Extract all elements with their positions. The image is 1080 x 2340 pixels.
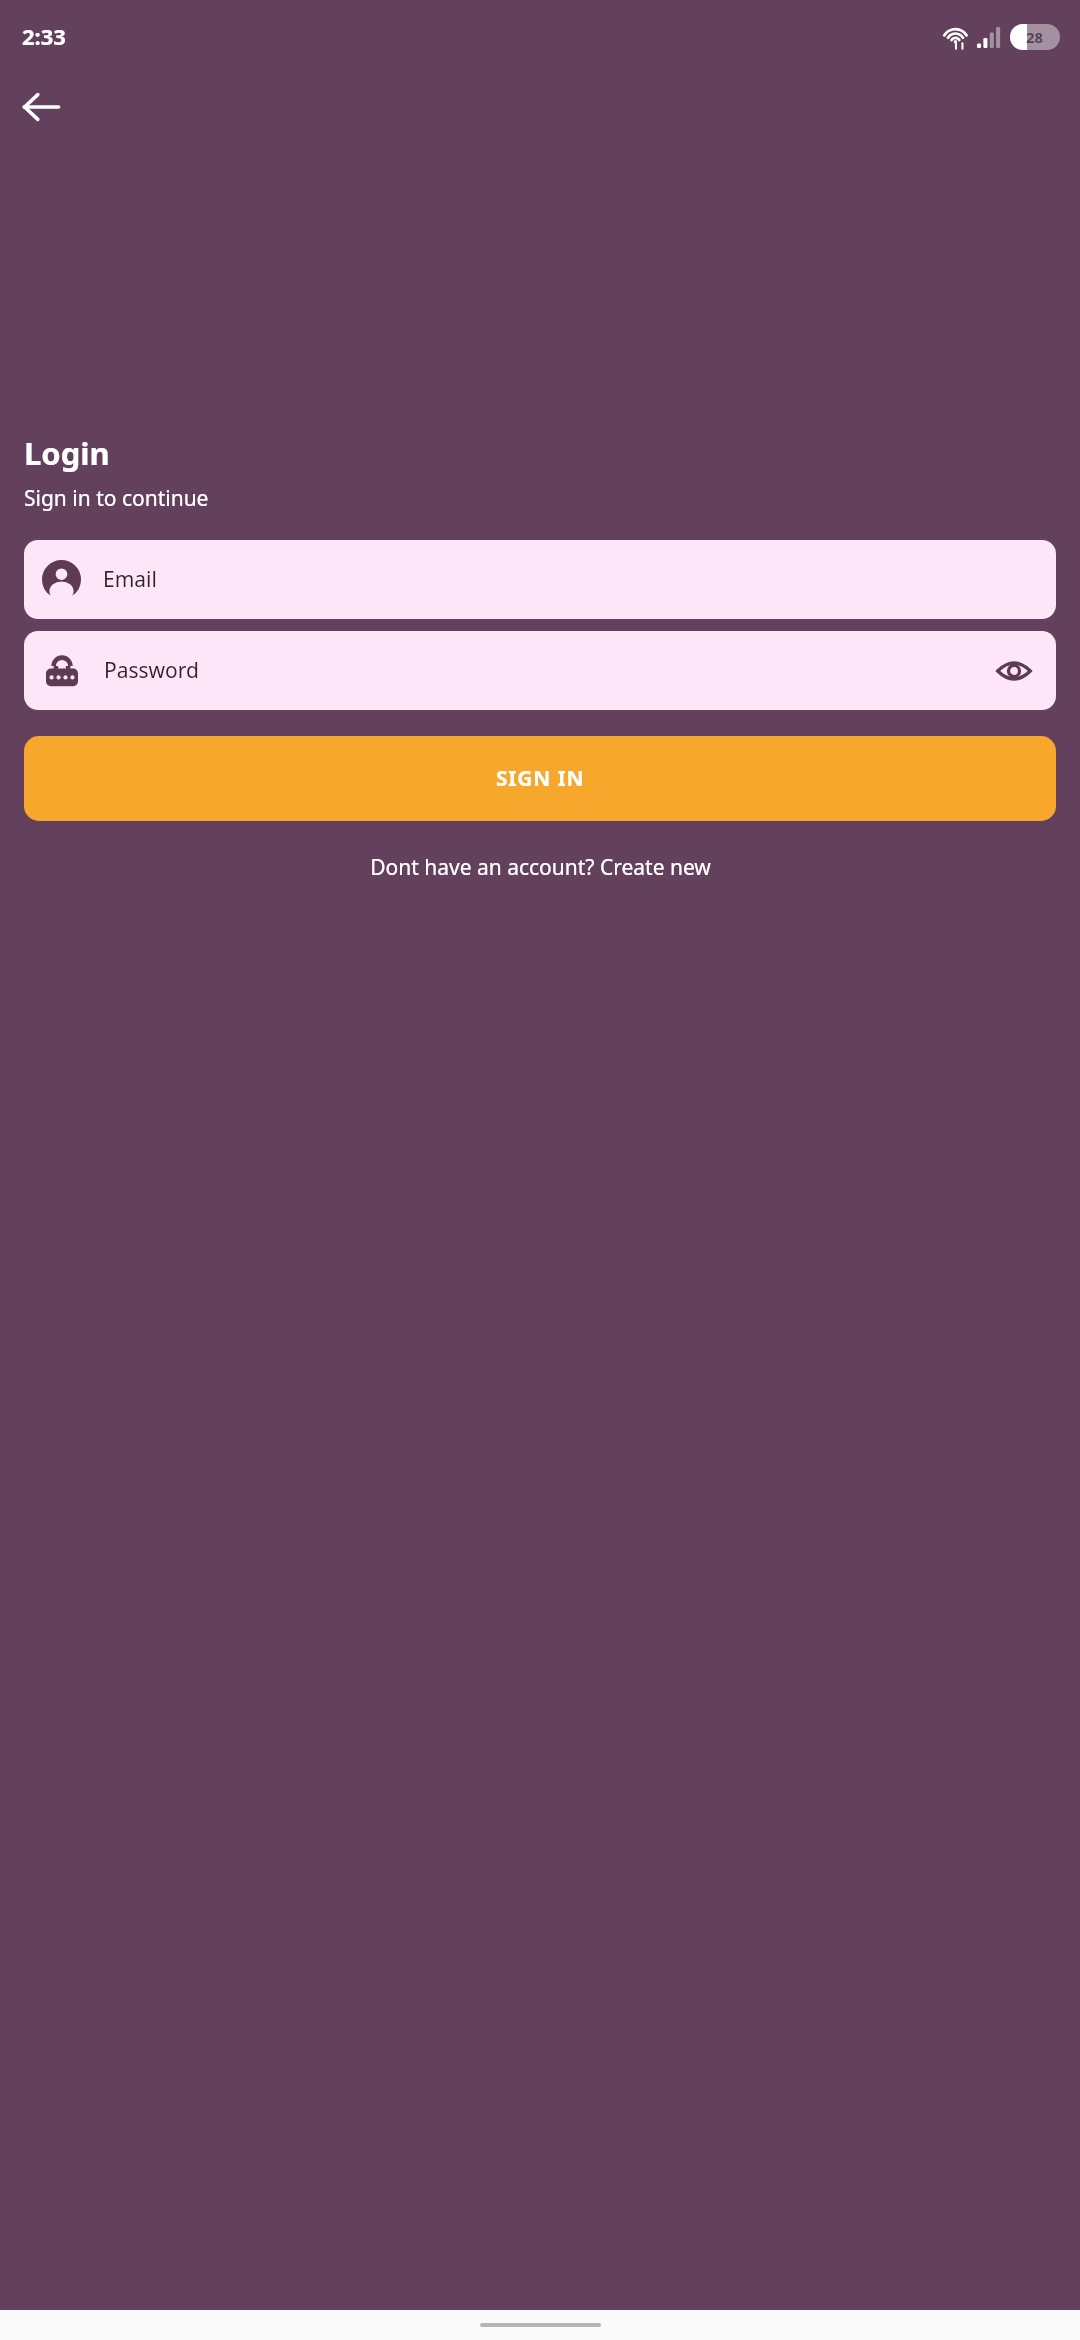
- staticText: Email: [103, 565, 157, 594]
- button[interactable]: Back: [12, 78, 70, 136]
- staticText: 2:33: [22, 21, 66, 51]
- button[interactable]: Dont have an account? Create new: [0, 845, 1080, 890]
- button[interactable]: Password: [24, 631, 1056, 710]
- staticText: Dont have an account? Create new: [370, 853, 711, 882]
- staticText: Password: [104, 656, 992, 685]
- button[interactable]: Show password: [992, 649, 1036, 693]
- staticText: Sign in to continue: [24, 484, 209, 513]
- button[interactable]: SIGN IN: [24, 736, 1056, 821]
- staticText: Login: [24, 432, 110, 474]
- button[interactable]: Email: [24, 540, 1056, 619]
- staticText: 28: [1026, 27, 1044, 47]
- staticText: SIGN IN: [496, 764, 585, 793]
